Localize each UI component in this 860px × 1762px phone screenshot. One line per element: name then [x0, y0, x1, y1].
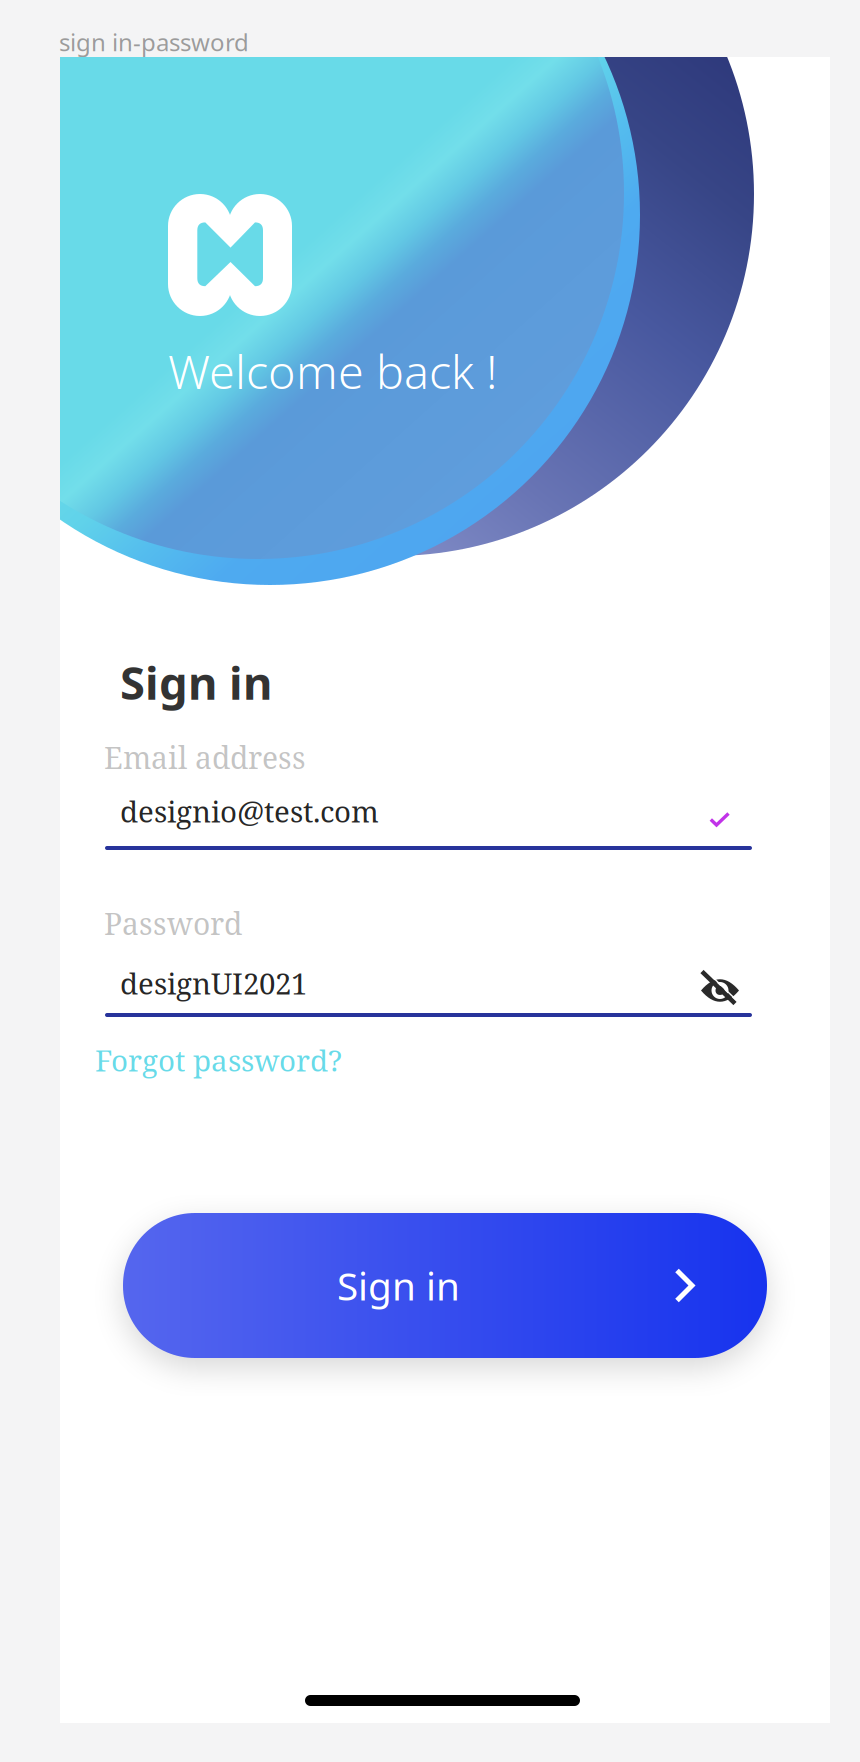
- button[interactable]: Email address is valid: [691, 797, 748, 842]
- button[interactable]: Show password: [686, 958, 754, 1018]
- staticText: Forgot password?: [95, 1040, 342, 1080]
- button[interactable]: Sign in: [123, 1213, 767, 1358]
- staticText: Sign in: [120, 652, 272, 712]
- staticText: designUI2021: [120, 963, 307, 1003]
- staticText: Password: [104, 903, 242, 944]
- staticText: Welcome back !: [168, 340, 497, 402]
- staticText: Sign in: [337, 1260, 460, 1311]
- button[interactable]: Forgot password?: [85, 1032, 352, 1088]
- staticText: sign in-password: [59, 26, 249, 58]
- staticText: Email address: [104, 737, 306, 778]
- staticText: designio@test.com: [120, 791, 379, 831]
